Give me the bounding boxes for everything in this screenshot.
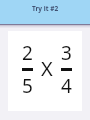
staticText: X [41,55,53,82]
button[interactable]: Try it #2 [0,0,90,24]
staticText: 3 [61,40,72,66]
staticText: 2 [22,40,33,66]
staticText: 5 [22,73,33,99]
staticText: Try it #2 [32,4,59,13]
button[interactable]: 2 [8,31,82,111]
staticText: 4 [61,73,72,99]
